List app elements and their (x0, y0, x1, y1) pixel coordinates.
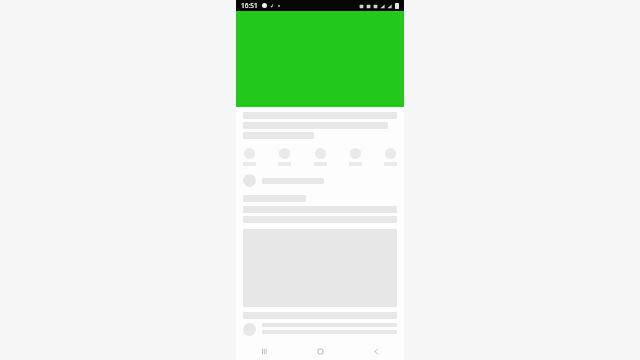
button[interactable]: Recent apps (236, 342, 292, 360)
button[interactable]: Home (292, 342, 348, 360)
staticText: 16:51 (241, 1, 258, 10)
button[interactable]: Back (348, 342, 404, 360)
